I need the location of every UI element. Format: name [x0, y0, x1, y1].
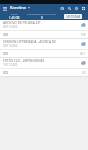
staticText: 40.1	[80, 52, 86, 56]
staticText: Datos	[11, 12, 18, 15]
staticText: Almacenamiento en nube	[27, 12, 56, 15]
staticText: FOTOS CLIC - IMPRESIONES	[3, 59, 45, 63]
staticText: Kcerāna	[10, 5, 26, 11]
staticText: 20/11/2020	[3, 44, 18, 48]
staticText: 8.2	[82, 71, 86, 75]
button[interactable]: Cloud status	[79, 40, 87, 48]
staticText: 100	[81, 33, 86, 37]
button[interactable]: GESTIONAR	[64, 14, 82, 19]
button[interactable]: Sync	[73, 5, 80, 12]
button[interactable]: Menu	[1, 4, 9, 12]
staticText: 20/11/2020	[3, 25, 18, 29]
staticText: 0	[41, 16, 43, 20]
staticText: PDF	[3, 33, 8, 36]
button[interactable]: Search	[66, 5, 73, 12]
staticText: ZIP	[4, 71, 8, 74]
button[interactable]: Upload	[59, 5, 66, 12]
button[interactable]: FOTOS CLIC - IMPRESIONES	[0, 58, 88, 76]
staticText: 19/11/2020	[3, 63, 18, 67]
button[interactable]: Kcerāna	[10, 4, 26, 12]
staticText: DOC	[3, 52, 8, 55]
button[interactable]: Grid view	[80, 5, 87, 12]
staticText: GESTIONAR	[66, 15, 81, 19]
button[interactable]: Cloud status	[79, 59, 87, 67]
button[interactable]: Expand account	[26, 4, 31, 12]
button[interactable]: VERSION OPTIMIZADA - ACERCA DE	[0, 39, 88, 57]
button[interactable]: ARCHIVO DE PRUEBA ZIP	[0, 20, 88, 38]
staticText: ARCHIVO DE PRUEBA ZIP	[3, 21, 41, 25]
staticText: VERSION OPTIMIZADA - ACERCA DE	[3, 40, 57, 44]
button[interactable]: Cloud status	[79, 21, 87, 29]
staticText: 1.45 GB	[9, 16, 20, 20]
